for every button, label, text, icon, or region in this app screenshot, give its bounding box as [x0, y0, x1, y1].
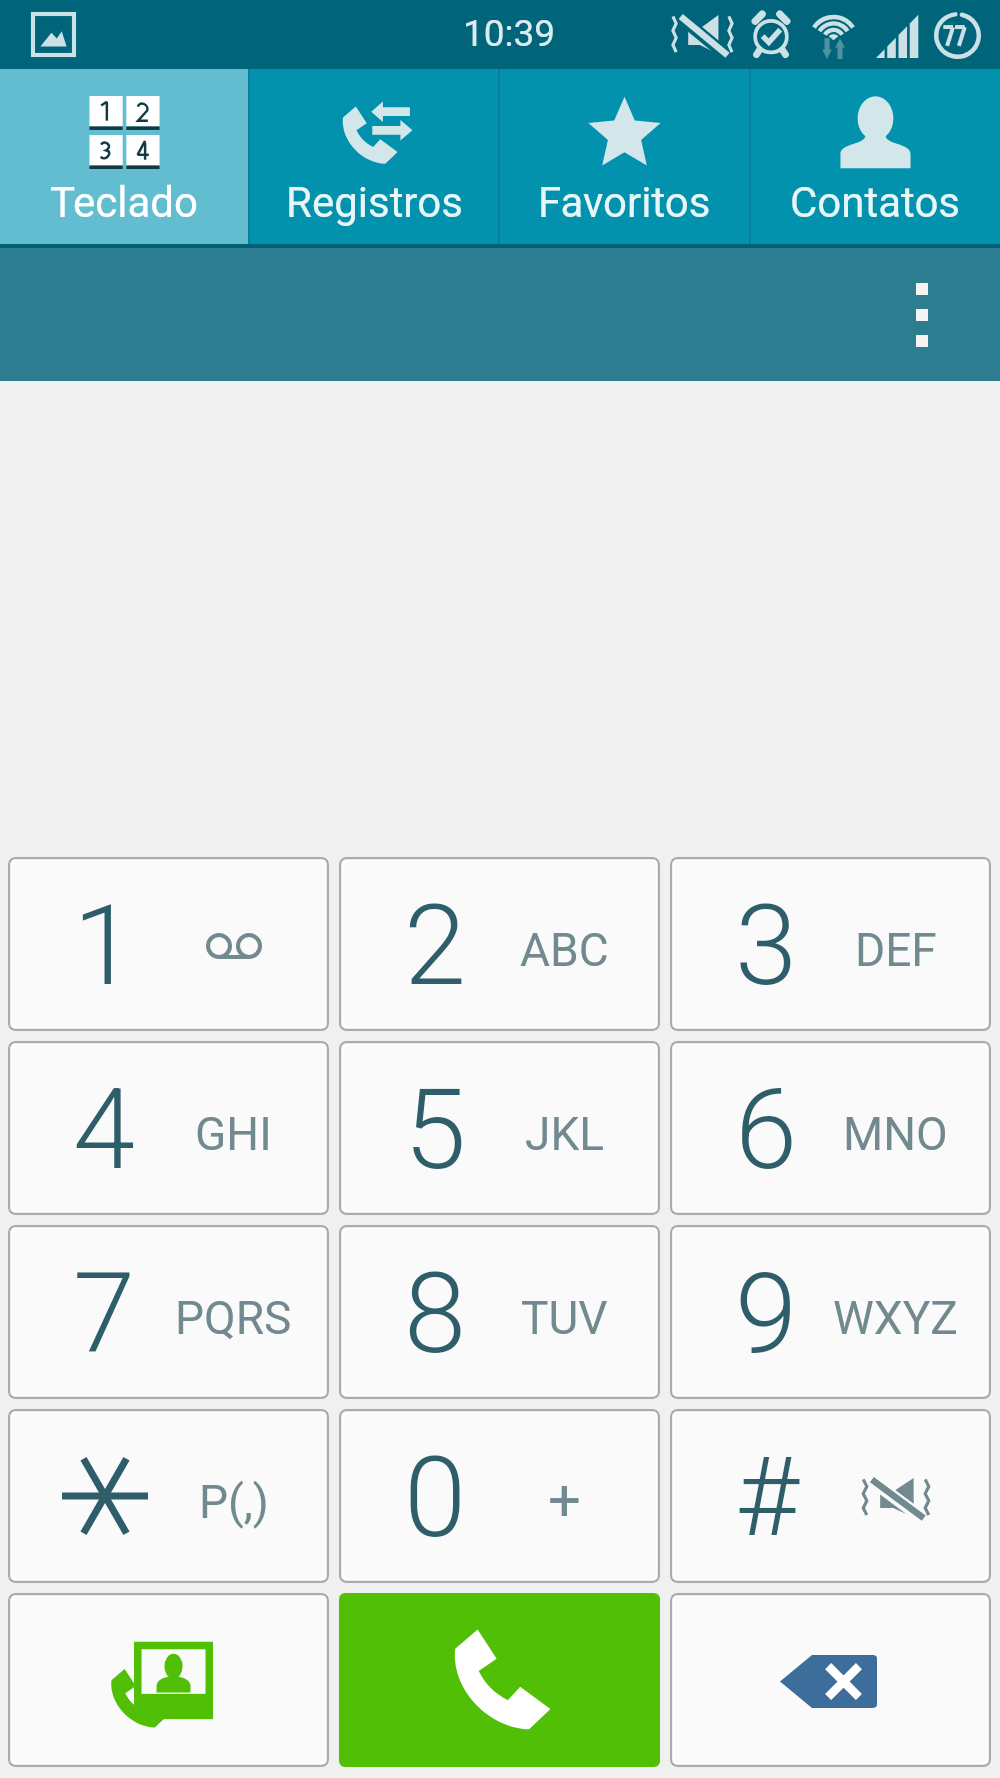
button[interactable]: 7 — [8, 1225, 329, 1399]
button[interactable]: 5 — [339, 1041, 660, 1215]
staticText: 1 — [73, 880, 136, 1011]
staticText: Favoritos — [538, 178, 711, 227]
button[interactable]: Call — [339, 1593, 660, 1767]
button[interactable]: 0 — [339, 1409, 660, 1583]
staticText: # — [735, 1433, 799, 1562]
staticText: Teclado — [50, 178, 198, 227]
button[interactable]: Registros — [250, 69, 498, 244]
staticText: 4 — [73, 1064, 136, 1195]
button[interactable]: Teclado — [0, 69, 248, 244]
staticText: 5 — [404, 1064, 467, 1195]
button[interactable]: P(,) — [8, 1409, 329, 1583]
button[interactable]: # — [670, 1409, 991, 1583]
staticText: 9 — [735, 1248, 798, 1379]
staticText: Registros — [286, 178, 463, 227]
staticText: + — [548, 1466, 581, 1534]
staticText: DEF — [855, 923, 937, 977]
staticText: TUV — [521, 1291, 608, 1345]
staticText: PQRS — [175, 1291, 292, 1345]
staticText: MNO — [843, 1107, 948, 1161]
staticText: 8 — [404, 1248, 467, 1379]
staticText: 10:39 — [463, 12, 556, 55]
button[interactable]: More options — [844, 248, 1000, 381]
button[interactable]: Backspace — [670, 1593, 991, 1767]
button[interactable]: Contatos — [751, 69, 1000, 244]
staticText: JKL — [525, 1107, 605, 1161]
button[interactable]: 4 — [8, 1041, 329, 1215]
button[interactable]: 6 — [670, 1041, 991, 1215]
staticText: 3 — [735, 880, 798, 1011]
button[interactable]: Video call — [8, 1593, 329, 1767]
staticText: P(,) — [199, 1475, 269, 1529]
button[interactable]: Favoritos — [500, 69, 749, 244]
button[interactable]: 3 — [670, 857, 991, 1031]
staticText: 6 — [735, 1064, 798, 1195]
staticText: 0 — [404, 1432, 467, 1563]
button[interactable]: 8 — [339, 1225, 660, 1399]
staticText: 2 — [404, 880, 467, 1011]
staticText: 7 — [73, 1248, 136, 1379]
staticText: GHI — [195, 1107, 272, 1161]
staticText: ABC — [520, 923, 609, 977]
staticText: WXYZ — [833, 1291, 958, 1345]
button[interactable]: 9 — [670, 1225, 991, 1399]
button[interactable]: 1 — [8, 857, 329, 1031]
button[interactable]: 2 — [339, 857, 660, 1031]
staticText: Contatos — [790, 178, 961, 227]
